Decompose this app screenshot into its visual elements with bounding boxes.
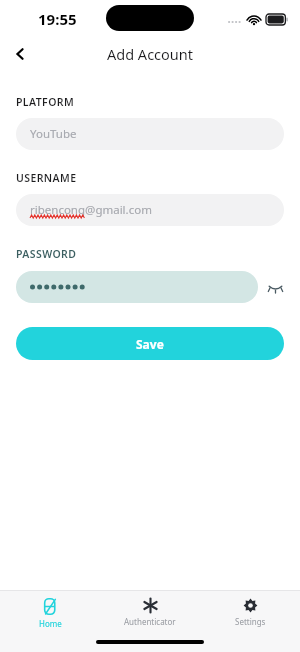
button[interactable]: Show password — [258, 270, 292, 304]
button[interactable]: Settings — [200, 591, 300, 627]
staticText: PLATFORM — [16, 95, 75, 109]
staticText: 19:55 — [38, 9, 77, 29]
button[interactable] — [16, 271, 258, 303]
staticText: Authenticator — [124, 616, 176, 627]
button[interactable]: YouTube — [16, 118, 284, 150]
staticText: Add Account — [107, 44, 193, 64]
staticText: USERNAME — [16, 171, 77, 185]
staticText: PASSWORD — [16, 247, 77, 261]
button[interactable]: Authenticator — [100, 591, 200, 627]
button[interactable]: Home — [0, 591, 100, 629]
staticText: ribencong@gmail.com — [30, 202, 152, 218]
staticText: Home — [39, 618, 62, 629]
button[interactable]: ribencong@gmail.com — [16, 194, 284, 226]
staticText: Save — [136, 336, 164, 352]
staticText: Settings — [235, 616, 266, 627]
button[interactable]: Save — [16, 327, 284, 360]
button[interactable]: Back — [0, 38, 40, 70]
staticText: YouTube — [30, 126, 77, 142]
